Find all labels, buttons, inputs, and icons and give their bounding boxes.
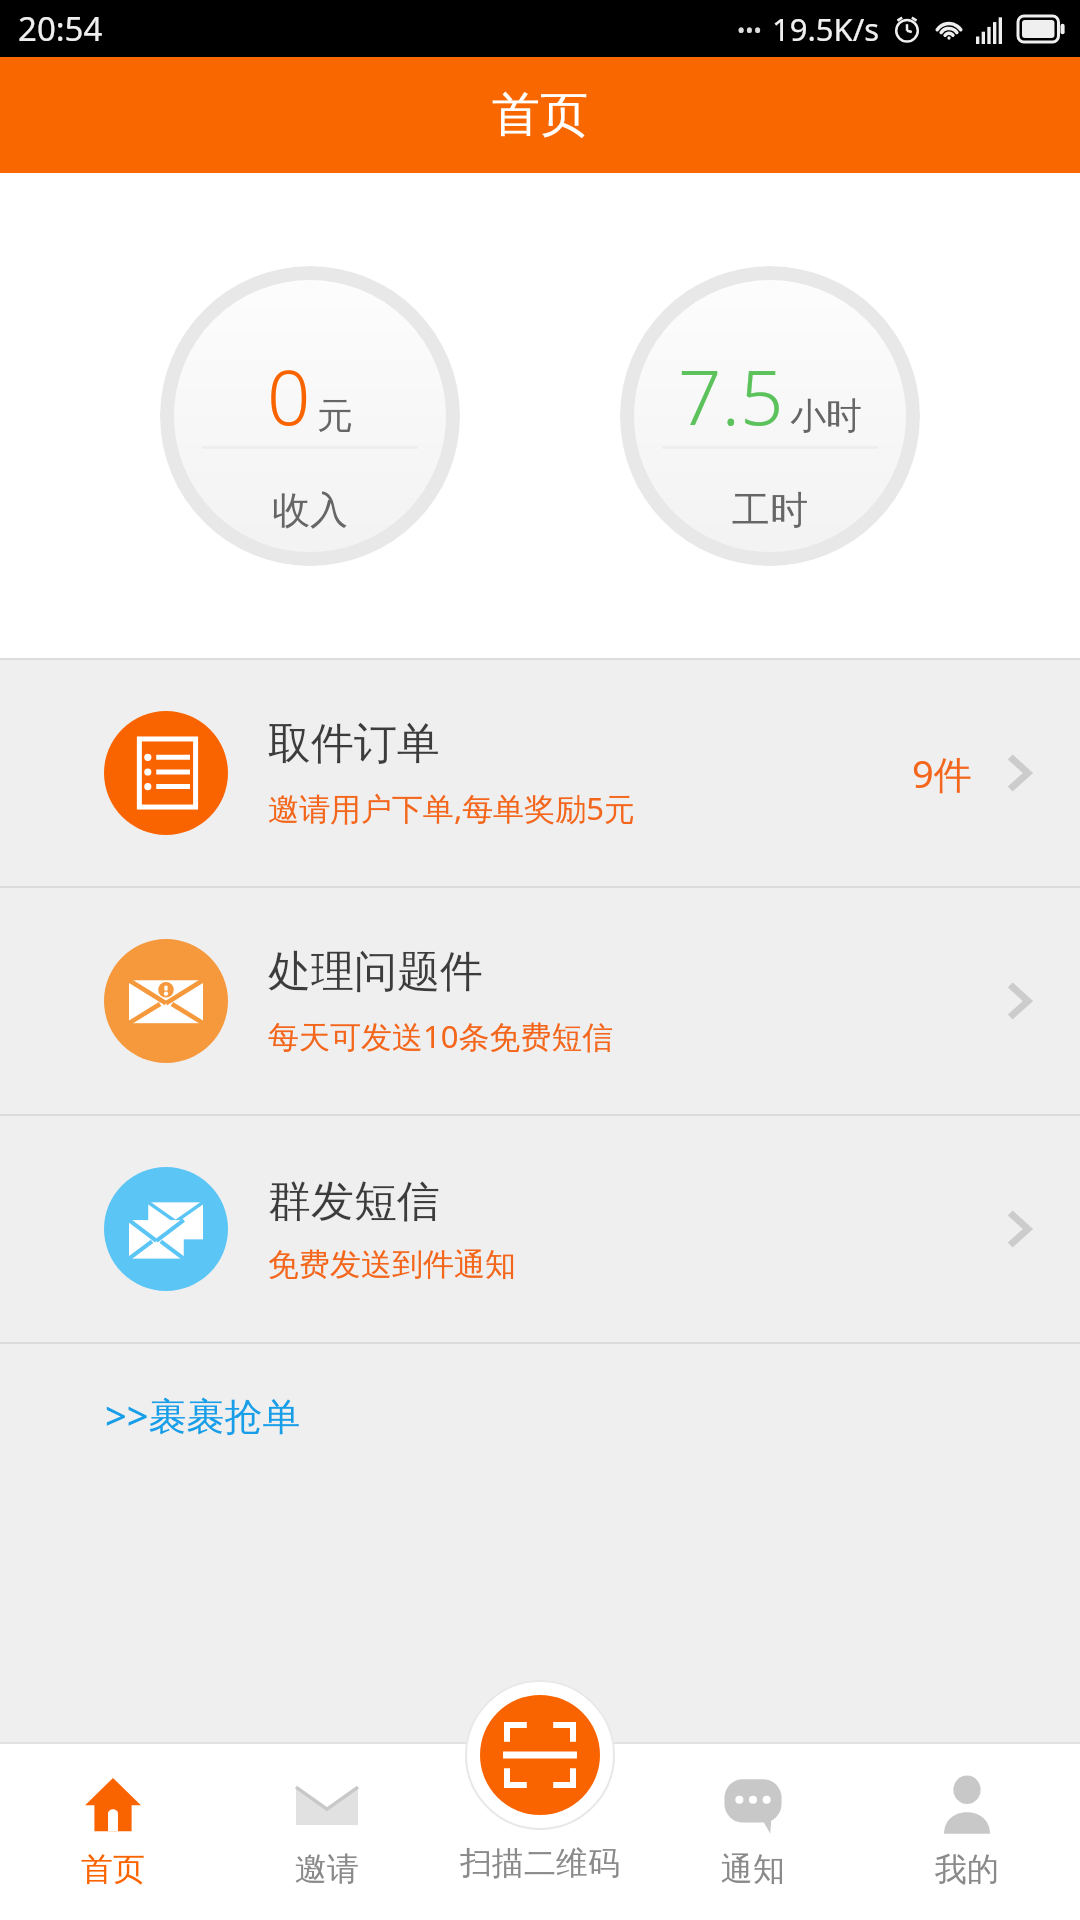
staticText: 邀请	[295, 1849, 359, 1889]
staticText: 群发短信	[268, 1175, 440, 1229]
staticText: 通知	[721, 1849, 785, 1889]
staticText: 免费发送到件通知	[268, 1245, 516, 1284]
staticText: 每天可发送10条免费短信	[268, 1015, 614, 1057]
button[interactable]: 0	[160, 266, 460, 566]
staticText: 7.5	[678, 344, 784, 448]
staticText: 0	[267, 344, 311, 448]
staticText: 小时	[790, 393, 862, 438]
button[interactable]: 扫描二维码	[465, 1680, 615, 1830]
staticText: 处理问题件	[268, 945, 483, 999]
staticText: 收入	[272, 486, 348, 534]
button[interactable]: 处理问题件	[0, 888, 1080, 1114]
staticText: 首页	[81, 1849, 145, 1889]
staticText: 扫描二维码	[460, 1843, 620, 1883]
staticText: 取件订单	[268, 717, 440, 771]
button[interactable]: 扫描二维码	[440, 1742, 640, 1920]
staticText: >>裹裹抢单	[105, 1389, 301, 1441]
staticText: 元	[317, 393, 353, 438]
button[interactable]: 首页	[13, 1742, 213, 1920]
button[interactable]: 取件订单	[0, 660, 1080, 886]
button[interactable]: 群发短信	[0, 1116, 1080, 1342]
button[interactable]: 通知	[653, 1742, 853, 1920]
button[interactable]: 我的	[867, 1742, 1067, 1920]
staticText: 邀请用户下单,每单奖励5元	[268, 787, 636, 829]
staticText: 9件	[912, 747, 972, 799]
staticText: 19.5K/s	[772, 8, 880, 50]
button[interactable]: 7.5	[620, 266, 920, 566]
staticText: 我的	[935, 1849, 999, 1889]
staticText: 工时	[732, 486, 808, 534]
button[interactable]: >>裹裹抢单	[105, 1389, 301, 1441]
button[interactable]: 邀请	[227, 1742, 427, 1920]
staticText: •••	[737, 14, 762, 44]
staticText: 首页	[492, 85, 588, 145]
staticText: 20:54	[18, 6, 103, 51]
